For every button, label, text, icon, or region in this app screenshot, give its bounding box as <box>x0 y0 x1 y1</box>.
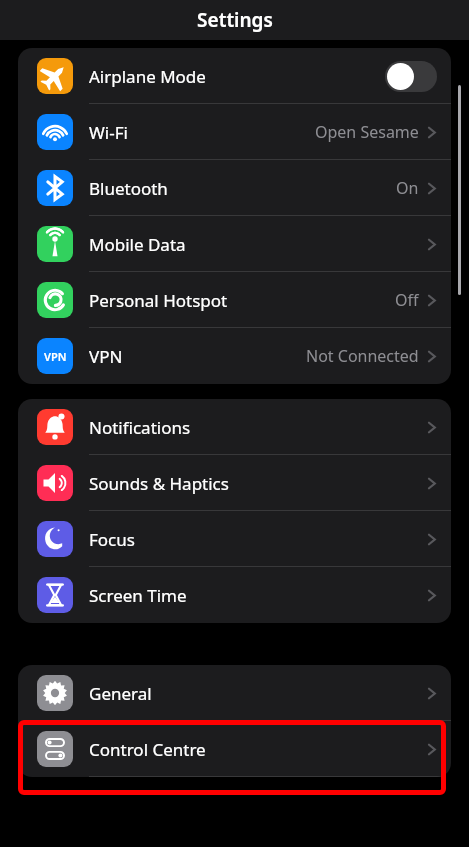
button[interactable]: General <box>18 665 451 721</box>
staticText: Not Connected <box>306 345 419 367</box>
staticText: Airplane Mode <box>89 65 206 88</box>
staticText: Mobile Data <box>89 233 186 256</box>
button[interactable]: VPN <box>18 328 451 384</box>
staticText: Off <box>395 289 419 311</box>
staticText: VPN <box>89 345 123 368</box>
staticText: Open Sesame <box>315 121 419 143</box>
staticText: Wi-Fi <box>89 121 128 144</box>
staticText: Settings <box>197 7 273 33</box>
staticText: Personal Hotspot <box>89 289 228 312</box>
button[interactable]: Screen Time <box>18 567 451 623</box>
button[interactable]: Sounds & Haptics <box>18 455 451 511</box>
staticText: Notifications <box>89 416 191 439</box>
button[interactable]: Focus <box>18 511 451 567</box>
staticText: General <box>89 682 152 705</box>
button[interactable]: Wi-Fi <box>18 104 451 160</box>
button[interactable]: Bluetooth <box>18 160 451 216</box>
staticText: Control Centre <box>89 738 206 761</box>
button[interactable]: Notifications <box>18 399 451 455</box>
staticText: On <box>396 177 419 199</box>
staticText: Focus <box>89 528 135 551</box>
button[interactable]: Mobile Data <box>18 216 451 272</box>
button[interactable]: Personal Hotspot <box>18 272 451 328</box>
staticText: Screen Time <box>89 584 187 607</box>
button[interactable]: Airplane Mode <box>18 48 451 104</box>
button[interactable]: Control Centre <box>18 721 451 777</box>
button[interactable]: Airplane Mode toggle <box>385 61 437 92</box>
staticText: Sounds & Haptics <box>89 472 229 495</box>
staticText: Bluetooth <box>89 177 168 200</box>
staticText: VPN <box>44 349 67 364</box>
